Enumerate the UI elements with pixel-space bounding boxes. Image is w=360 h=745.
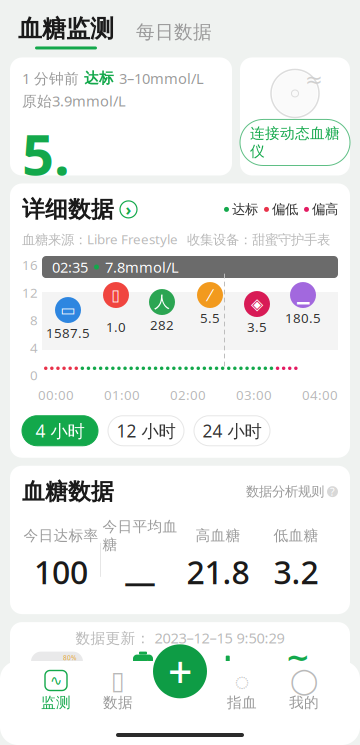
button[interactable]: ◌ [211,669,273,713]
staticText: 人 [154,292,170,312]
staticText: ⚡ [133,660,153,679]
staticText: mmol/L [74,246,128,265]
button[interactable]: ◯ [273,669,335,713]
staticText: 血糖来源：Libre Freestyle 收集设备：甜蜜守护手表 [22,230,330,248]
staticText: 80% [63,653,77,662]
staticText: 数据分析规则 [246,483,324,500]
staticText: 校准血糖 [135,278,195,296]
staticText: 03:00 [236,386,272,404]
staticText: ≈ [305,67,323,92]
staticText: 7.8mmol/L [105,257,179,277]
staticText: 1 分钟前 [22,68,79,88]
button[interactable]: 连接动态血糖仪 [240,119,350,165]
button[interactable]: 查看详细数据 [120,199,137,220]
button[interactable]: 校准血糖 [125,273,205,301]
staticText: ▁ [297,286,309,304]
staticText: 0 [30,366,38,384]
staticText: 12月12日 周二 [37,664,73,684]
staticText: ◌ [234,664,249,697]
staticText: 原始3.9mmol/L [22,91,126,110]
staticText: 无线网络 [264,690,332,711]
staticText: 高血糖 [195,527,240,545]
staticText: 24 小时 [202,419,261,442]
staticText: ◈ [251,295,263,313]
button[interactable]: 血糖监测 [18,14,114,49]
button[interactable]: 12 小时 [108,416,184,446]
staticText: ↑↑ [74,223,108,246]
staticText: 3.2 [273,551,318,593]
staticText: 180.5 [285,309,321,327]
staticText: 我的 [289,693,319,711]
staticText: 血糖数据 [22,478,114,505]
staticText: ≋ [285,647,310,680]
staticText: 数据更新： 2023–12–15 9:50:29 [75,628,284,648]
button[interactable]: 数据分析规则 [246,483,338,500]
staticText: 12 [22,284,38,301]
staticText: 02:35 [52,257,88,277]
staticText: 指血 [227,693,257,711]
staticText: 1587.5 [46,324,90,342]
staticText: 今日达标率 [23,527,98,545]
staticText: 监测 [41,693,71,711]
staticText: 连接动态血糖仪 [250,124,340,160]
staticText: ▭ [60,301,75,319]
staticText: 02:00 [170,386,206,404]
button[interactable]: 每日数据 [136,20,212,49]
staticText: 达标 [84,69,114,87]
button[interactable]: 记录指尖血 [22,273,117,301]
staticText: 通讯信号 [184,690,252,711]
staticText: 4 小时 [35,419,84,442]
staticText: ? [330,485,335,499]
staticText: ◯ [290,666,318,695]
staticText: 04:00 [302,386,338,404]
staticText: 5.5 [200,309,220,327]
staticText: 4 [30,339,38,356]
staticText: 282 [150,316,174,334]
staticText: 探头14天 [132,210,187,228]
staticText: 低血糖 [273,527,318,545]
staticText: › [125,199,131,220]
staticText: 100 [34,551,88,593]
staticText: 01:00 [104,386,140,404]
staticText: ▯ [111,666,125,695]
staticText: 3.5 [247,318,267,336]
staticText: 偏高 [312,201,338,218]
staticText: 偏低 [272,201,298,218]
staticText: 16 [22,256,38,274]
staticText: 21.8 [186,551,249,593]
staticText: 记录指尖血 [32,278,107,296]
staticText: ▯ [111,286,120,304]
staticText: 75% [126,691,160,714]
staticText: 21小时180分钟 [132,229,211,263]
staticText: 血糖监测 [18,14,114,43]
button[interactable]: 24 小时 [194,416,270,446]
button[interactable]: 添加记录 [153,643,207,700]
staticText: 3–10mmol/L [119,68,204,88]
staticText: + [168,643,192,700]
staticText: 5.5 [22,116,70,265]
button[interactable]: ∿ [25,669,87,713]
staticText: 14:08 [37,685,75,735]
staticText: ∿ [50,672,62,689]
staticText: 12 小时 [116,419,175,442]
staticText: 今日平均血糖 [102,518,177,554]
staticText: — [124,560,156,602]
staticText: 00:00 [38,386,74,404]
button[interactable]: ▯ [87,669,149,713]
staticText: 达标 [232,201,258,218]
staticText: ⁄ [209,284,211,306]
staticText: 每日数据 [136,20,212,43]
staticText: 数据 [103,693,133,711]
staticText: 1.0 [106,318,126,336]
staticText: 8 [30,311,38,329]
staticText: 详细数据 [22,195,114,223]
button[interactable]: 4 小时 [22,416,98,446]
